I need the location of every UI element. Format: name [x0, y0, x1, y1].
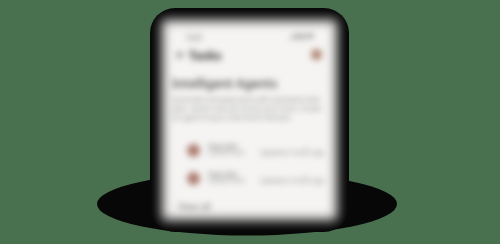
staticText: Intelligent Agents	[172, 75, 278, 91]
button[interactable]: View all	[178, 200, 211, 212]
staticText: Tasks	[189, 47, 222, 63]
staticText: Task title	[208, 142, 238, 152]
button[interactable]: Task title	[182, 138, 317, 164]
staticText: Updated 2 hours ago	[260, 176, 325, 185]
button[interactable]: Profile	[311, 49, 322, 60]
staticText: Subtitle text	[208, 176, 245, 185]
staticText: ›	[304, 169, 308, 183]
staticText: ›	[304, 141, 308, 155]
staticText: Subtitle text	[208, 148, 245, 157]
staticText: Updated 2 hours ago	[260, 148, 325, 157]
button[interactable]: Task title	[182, 166, 317, 192]
staticText: 9:41	[187, 32, 203, 43]
button[interactable]: Back	[174, 48, 188, 62]
staticText: Task title	[208, 170, 238, 180]
staticText: Automate everyday work with assistants t…	[172, 95, 330, 122]
